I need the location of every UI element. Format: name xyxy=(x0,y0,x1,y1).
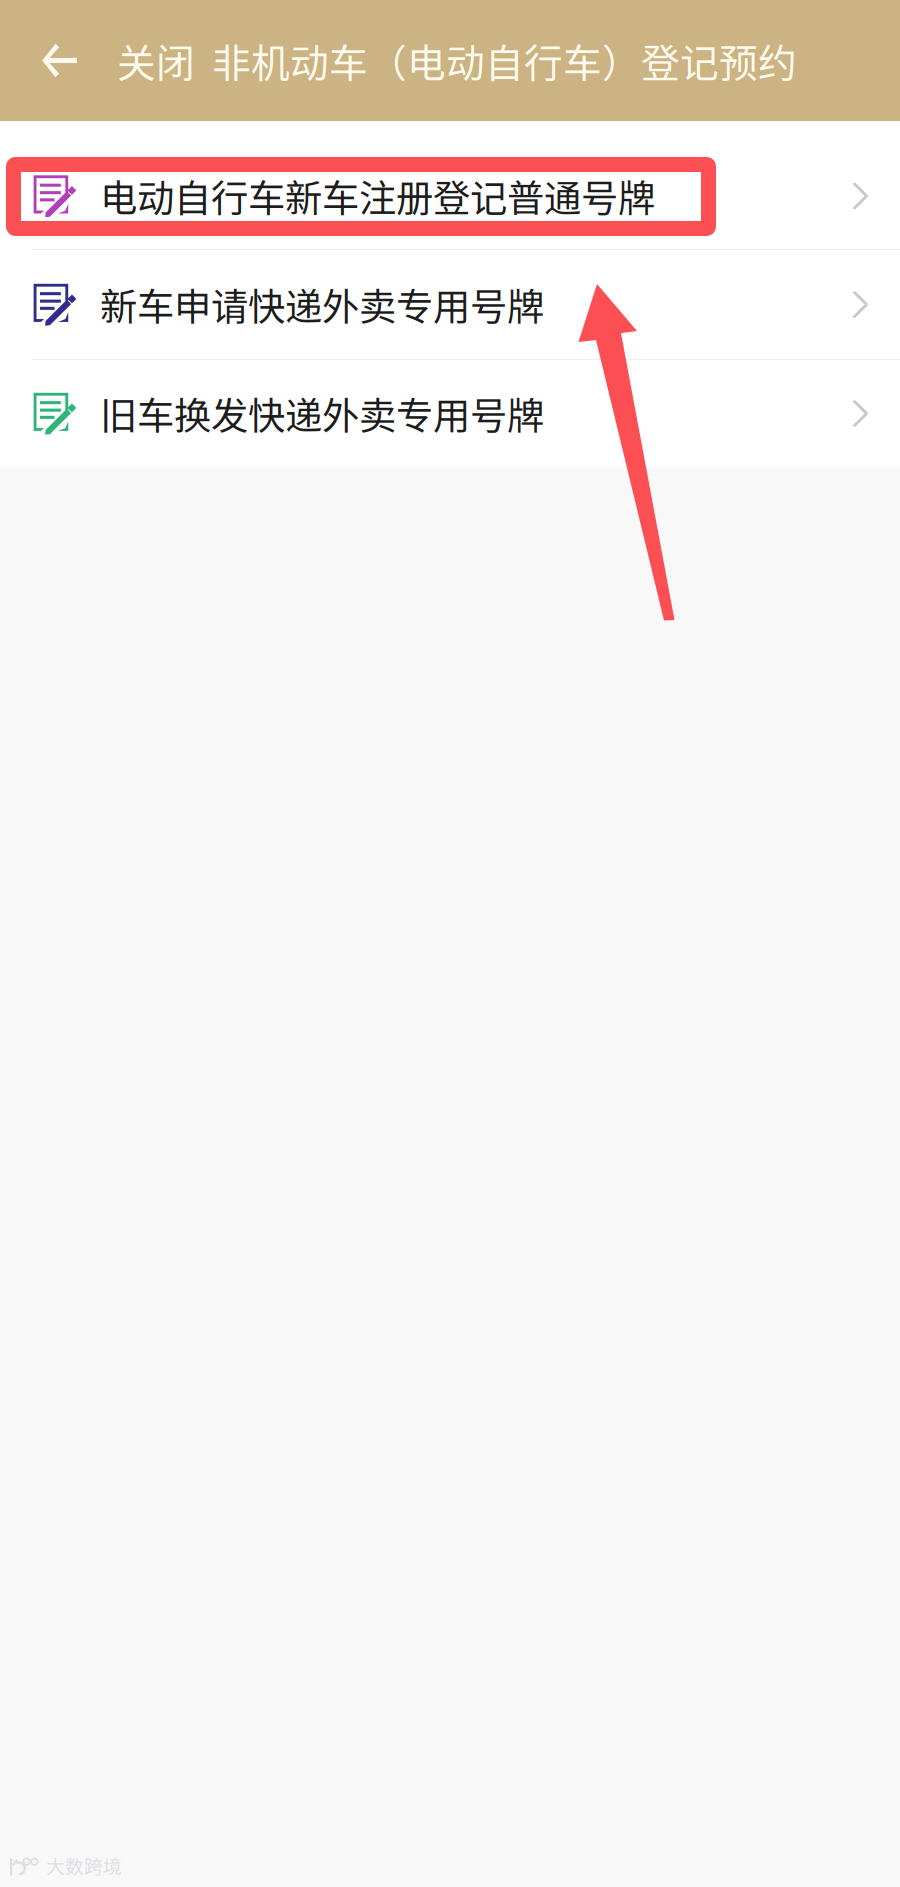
staticText: 大数跨境 xyxy=(46,1852,122,1879)
staticText: 关闭 xyxy=(117,32,195,88)
button[interactable]: 旧车换发快递外卖专用号牌 xyxy=(0,360,900,467)
staticText: 非机动车（电动自行车）登记预约 xyxy=(212,32,797,88)
staticText: 电动自行车新车注册登记普通号牌 xyxy=(100,169,655,223)
staticText: 新车申请快递外卖专用号牌 xyxy=(100,277,544,332)
button[interactable]: 新车申请快递外卖专用号牌 xyxy=(0,250,900,359)
button[interactable]: 电动自行车新车注册登记普通号牌 xyxy=(0,121,900,249)
staticText: 旧车换发快递外卖专用号牌 xyxy=(100,386,544,441)
button[interactable]: 关闭 xyxy=(0,20,195,100)
